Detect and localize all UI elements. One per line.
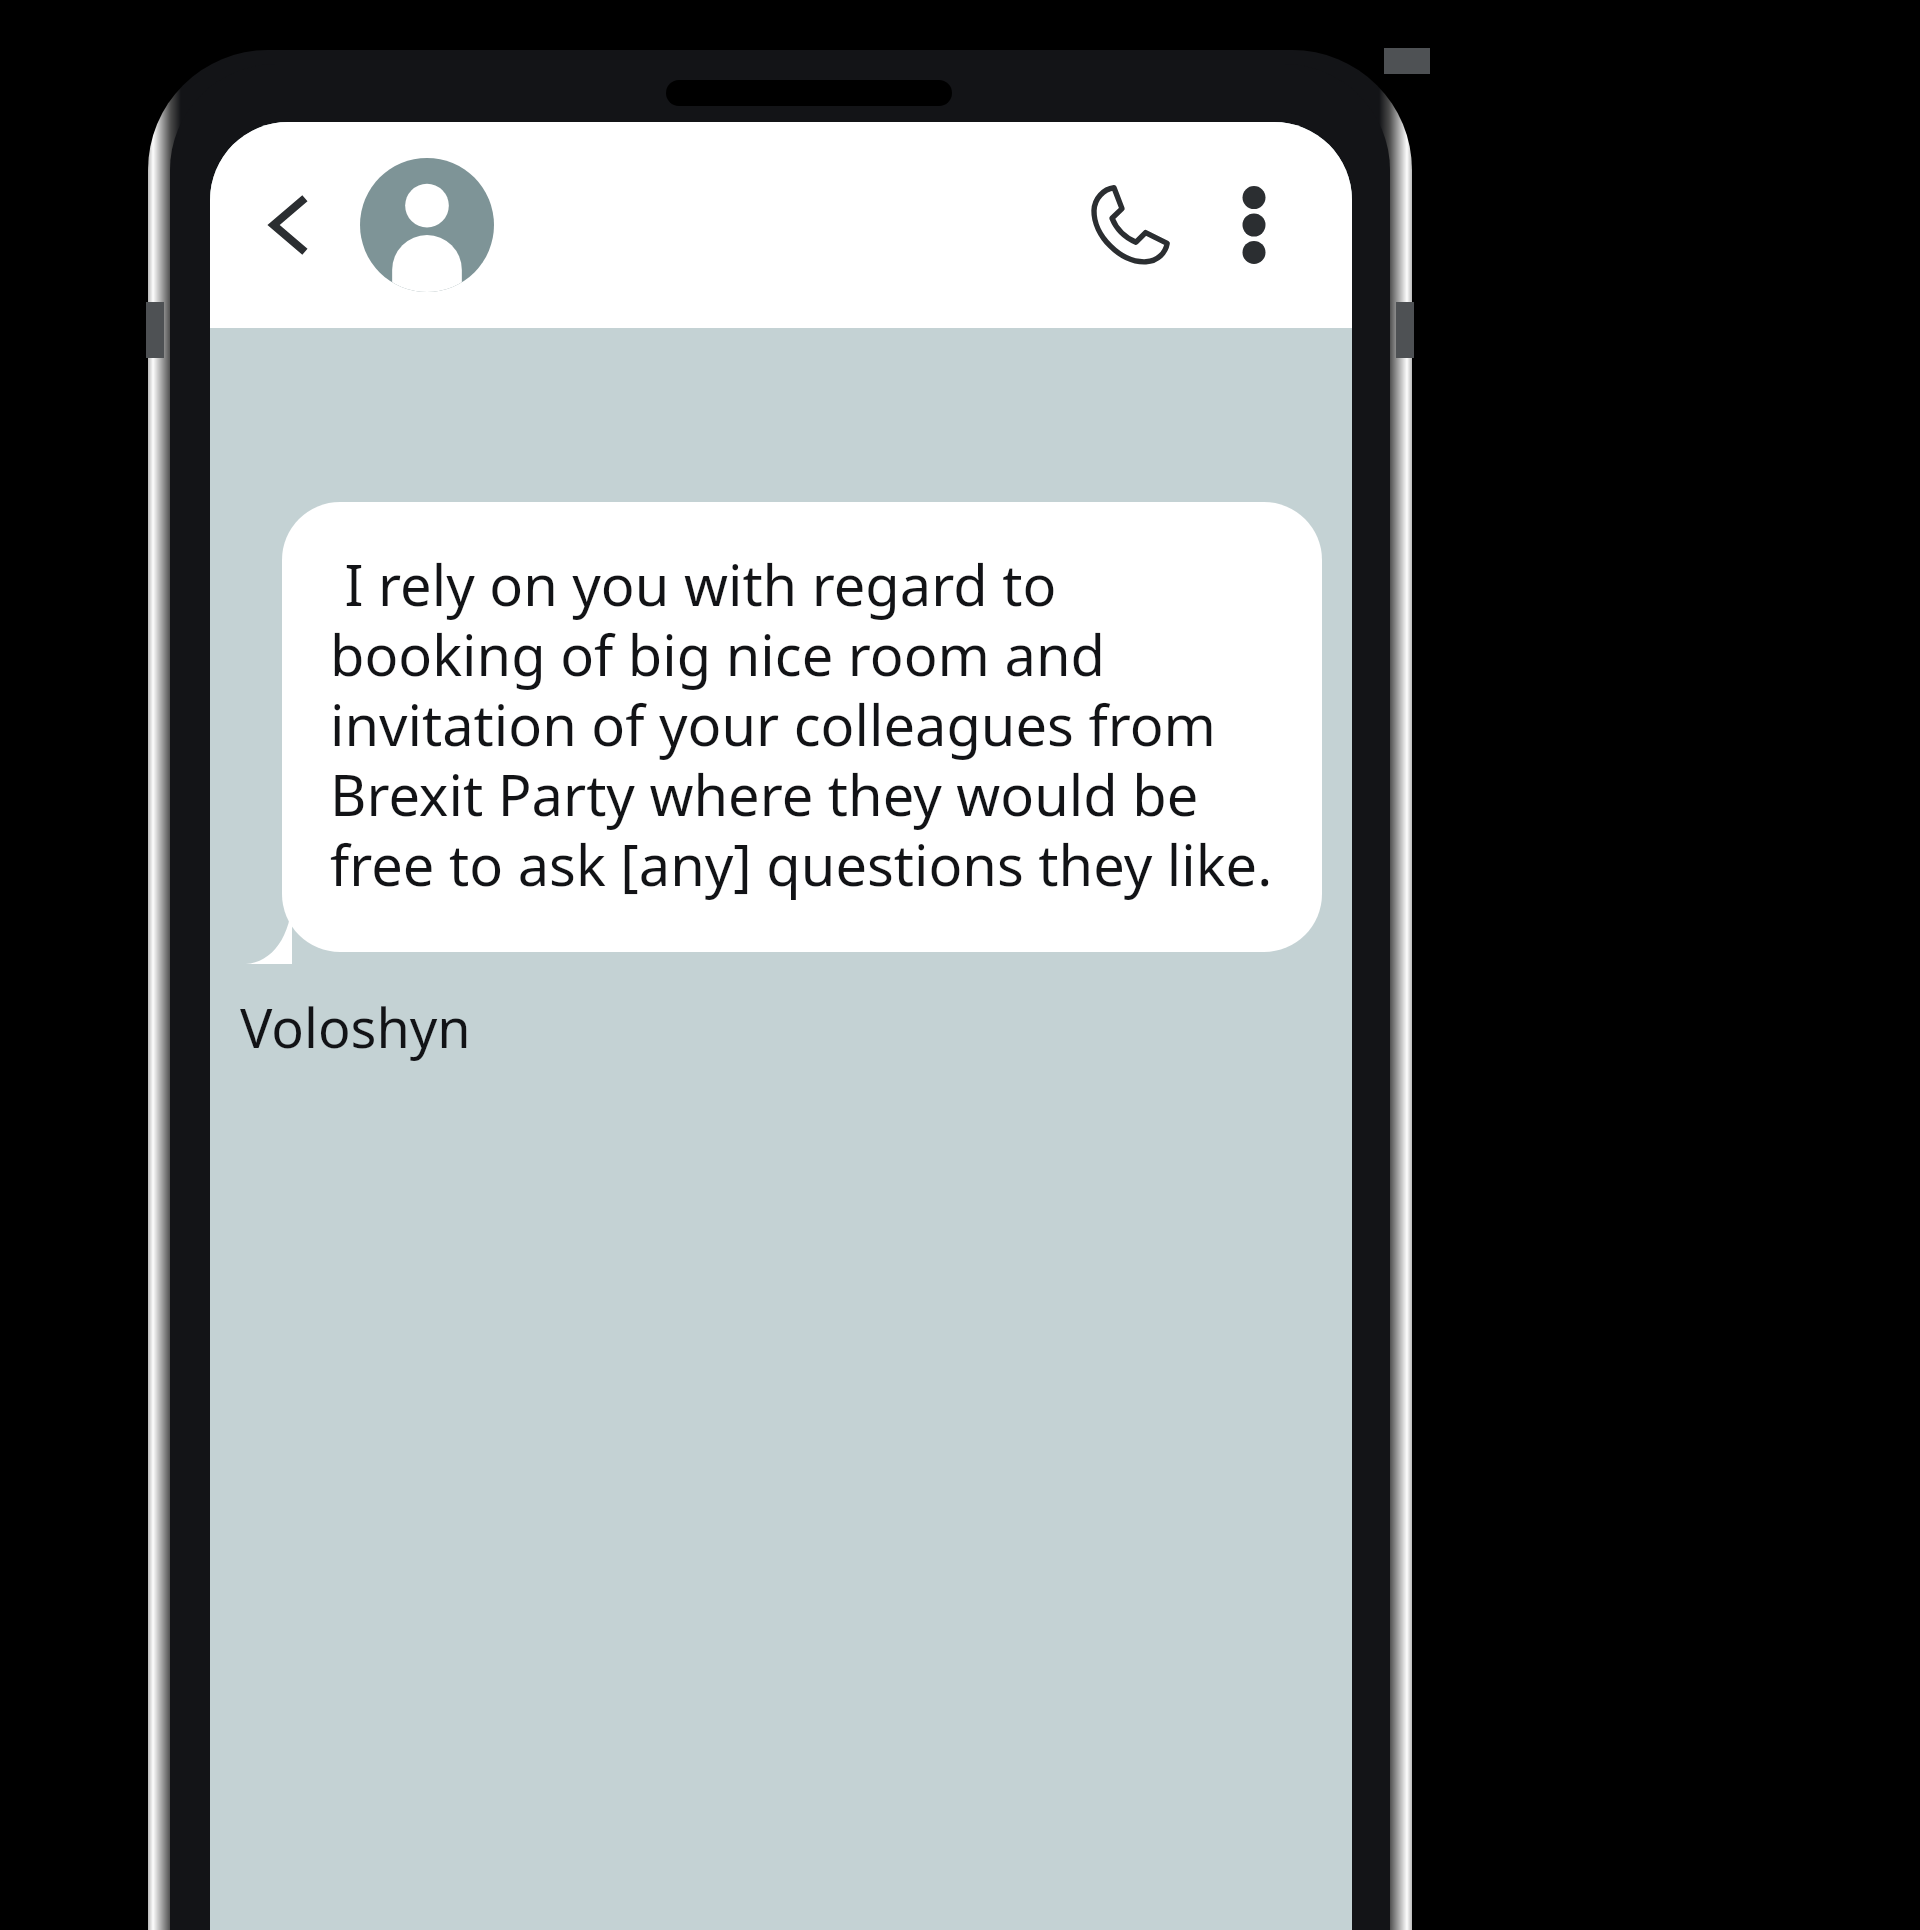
button[interactable]: I rely on you with regard to booking of … (282, 502, 1322, 952)
button[interactable]: More options (1198, 169, 1310, 281)
button[interactable]: Call (1068, 163, 1192, 287)
staticText: Voloshyn (240, 990, 471, 1064)
staticText: I rely on you with regard to booking of … (330, 546, 1286, 902)
button[interactable]: Back (236, 170, 346, 280)
button[interactable]: Contact avatar (360, 158, 494, 292)
